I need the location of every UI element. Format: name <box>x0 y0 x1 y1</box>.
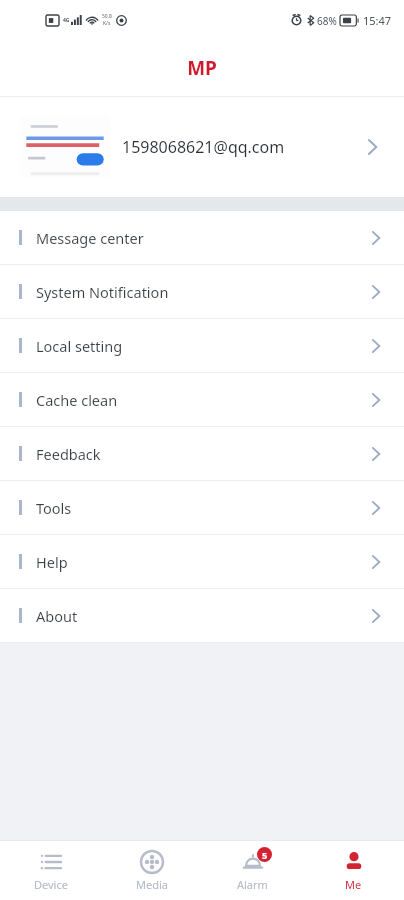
button[interactable]: Me <box>303 841 404 900</box>
button[interactable]: Message center <box>0 211 404 264</box>
staticText: 5 <box>262 849 268 861</box>
staticText: Feedback <box>36 444 101 464</box>
staticText: 1598068621@qq.com <box>122 136 285 158</box>
staticText: System Notification <box>36 282 169 302</box>
staticText: Message center <box>36 228 144 248</box>
staticText: Cache clean <box>36 390 118 410</box>
staticText: Me <box>345 877 362 892</box>
staticText: MP <box>187 55 217 81</box>
button[interactable]: Alarm <box>202 841 303 900</box>
button[interactable]: Help <box>0 535 404 588</box>
button[interactable]: System Notification <box>0 265 404 318</box>
button[interactable]: Cache clean <box>0 373 404 426</box>
staticText: Local setting <box>36 336 123 356</box>
button[interactable]: About <box>0 589 404 642</box>
staticText: Media <box>136 877 168 892</box>
staticText: Help <box>36 552 68 572</box>
staticText: K/s <box>103 20 111 27</box>
staticText: Device <box>34 877 68 892</box>
staticText: Alarm <box>237 877 268 892</box>
staticText: 68% <box>317 14 337 28</box>
staticText: 15:47 <box>363 13 392 28</box>
button[interactable]: Tools <box>0 481 404 534</box>
staticText: Tools <box>36 498 72 518</box>
button[interactable]: 1598068621@qq.com <box>0 97 404 197</box>
staticText: 50.8 <box>102 13 112 20</box>
button[interactable]: Device <box>0 841 101 900</box>
button[interactable]: Feedback <box>0 427 404 480</box>
staticText: 4G <box>63 17 70 24</box>
staticText: About <box>36 606 78 626</box>
button[interactable]: Media <box>101 841 202 900</box>
button[interactable]: Local setting <box>0 319 404 372</box>
